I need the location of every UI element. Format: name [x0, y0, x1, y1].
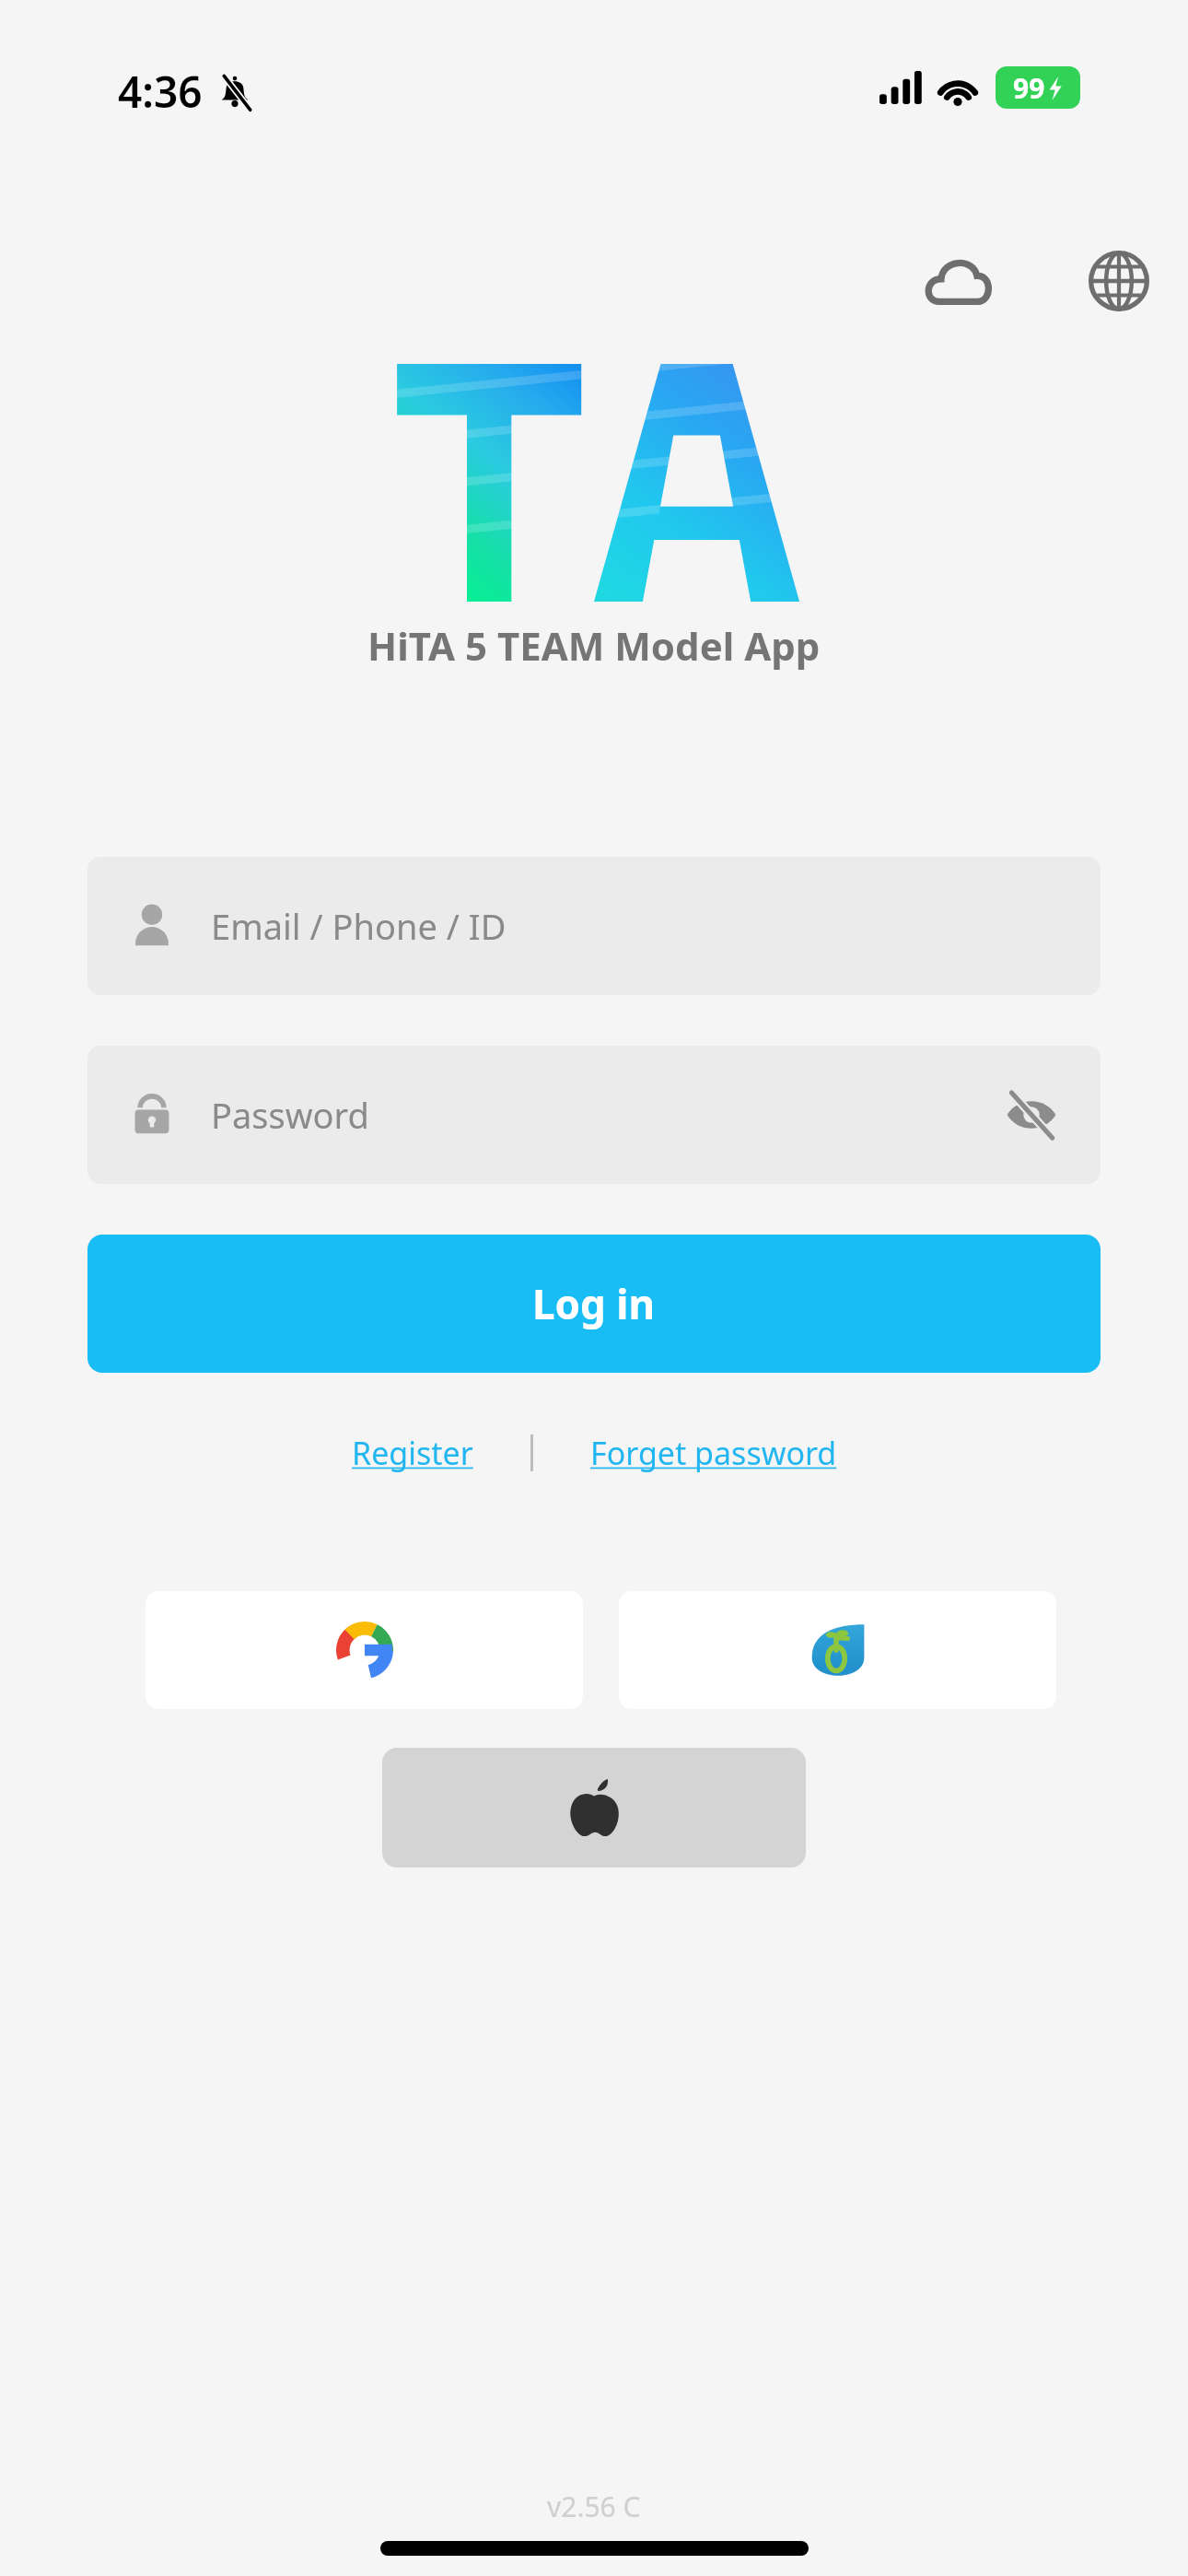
- button[interactable]: Cloud sync: [907, 230, 1008, 332]
- staticText: HiTA 5 TEAM Model App: [367, 619, 821, 672]
- button[interactable]: Log in: [87, 1235, 1101, 1373]
- button[interactable]: Sign in with Google: [146, 1591, 583, 1709]
- button[interactable]: Show password: [1001, 1084, 1062, 1145]
- staticText: v2.56 C: [547, 2488, 641, 2525]
- button[interactable]: Forget password: [579, 1426, 848, 1480]
- staticText: Password: [211, 1091, 369, 1139]
- staticText: 4:36: [118, 63, 203, 121]
- button[interactable]: Register: [341, 1426, 484, 1480]
- button[interactable]: Sign in with Apple: [382, 1748, 806, 1868]
- button[interactable]: Password: [87, 1046, 1101, 1184]
- button[interactable]: Email / Phone / ID: [87, 857, 1101, 995]
- button[interactable]: Language: [1068, 230, 1170, 332]
- staticText: Email / Phone / ID: [211, 902, 507, 950]
- staticText: Register: [352, 1432, 473, 1474]
- button[interactable]: Sign in with partner account: [619, 1591, 1056, 1709]
- staticText: Forget password: [590, 1432, 837, 1474]
- staticText: Log in: [532, 1276, 656, 1331]
- staticText: 99: [1013, 69, 1045, 107]
